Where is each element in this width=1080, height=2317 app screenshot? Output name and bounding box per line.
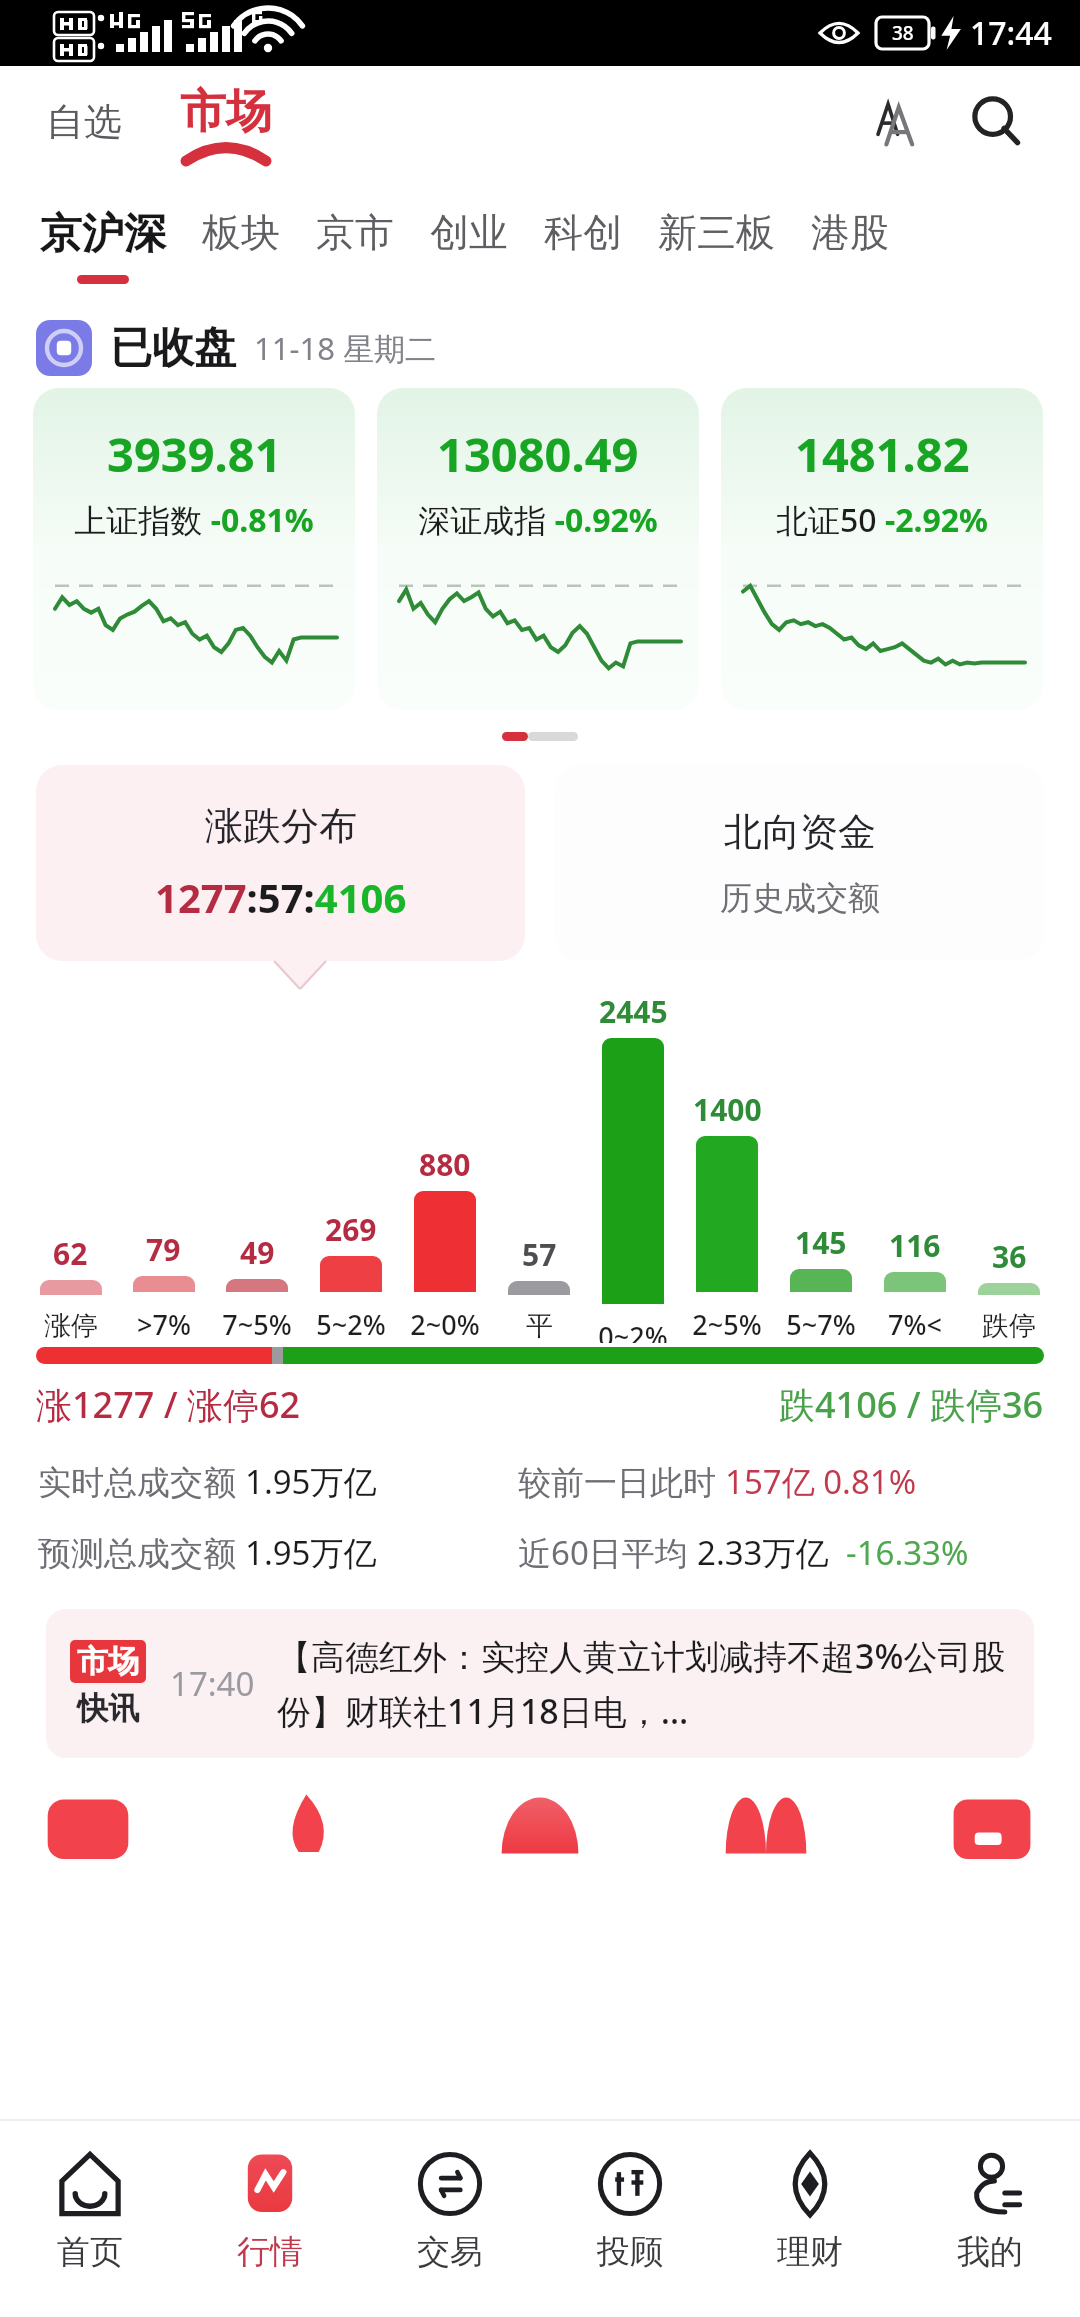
staticText: 涨跌分布 — [205, 802, 357, 850]
staticText: 近60日平均 — [518, 1530, 697, 1575]
button[interactable]: 北向资金 — [555, 765, 1044, 961]
staticText: 7%< — [888, 1306, 942, 1343]
button[interactable]: 1400 — [680, 1089, 774, 1343]
button[interactable]: 理财 — [720, 2121, 900, 2317]
staticText: 上证指数 -0.81% — [74, 498, 314, 542]
staticText: 1481.82 — [795, 422, 970, 486]
button[interactable]: 交易 — [360, 2121, 540, 2317]
button[interactable]: 科创 — [526, 178, 640, 271]
button[interactable]: 880 — [398, 1144, 492, 1343]
staticText: 5~7% — [786, 1306, 856, 1343]
staticText: 11-18 星期二 — [254, 327, 436, 369]
button[interactable]: Font size — [854, 84, 930, 160]
staticText: 【高德红外：实控人黄立计划减持不超3%公司股份】财联社11月18日电，… — [277, 1633, 1010, 1734]
button[interactable] — [492, 1782, 588, 1852]
staticText: 涨停 — [44, 1309, 98, 1343]
staticText: 49 — [240, 1232, 275, 1273]
button[interactable]: 2445 — [586, 991, 680, 1343]
staticText: 历史成交额 — [720, 878, 880, 918]
staticText: 5~2% — [316, 1306, 386, 1343]
staticText: -16.33% — [846, 1530, 969, 1575]
staticText: 北证50 -2.92% — [776, 498, 988, 542]
button[interactable]: 投顾 — [540, 2121, 720, 2317]
staticText: 涨1277 / 涨停62 — [36, 1380, 301, 1429]
staticText: 京沪深 — [40, 208, 166, 261]
button[interactable] — [944, 1782, 1040, 1852]
staticText: 2.33万亿 — [697, 1530, 846, 1575]
button[interactable]: 新三板 — [640, 178, 793, 271]
staticText: 7~5% — [222, 1306, 292, 1343]
button[interactable]: 269 — [304, 1209, 398, 1343]
staticText: 交易 — [417, 2231, 483, 2273]
staticText: 880 — [419, 1144, 471, 1185]
button[interactable] — [718, 1782, 814, 1852]
button[interactable]: 116 — [868, 1225, 962, 1343]
staticText: >7% — [137, 1306, 191, 1343]
button[interactable]: 京沪深 — [22, 178, 184, 284]
staticText: 17:44 — [970, 11, 1052, 55]
staticText: 17:40 — [170, 1661, 255, 1706]
button[interactable]: 创业 — [412, 178, 526, 271]
button[interactable]: 市场 — [180, 83, 272, 161]
button[interactable]: 62 — [24, 1233, 117, 1343]
staticText: 跌停 — [982, 1309, 1036, 1343]
staticText: 首页 — [57, 2231, 123, 2273]
button[interactable]: 1481.82 — [721, 388, 1043, 710]
staticText: 预测总成交额 — [38, 1530, 245, 1575]
staticText: 跌4106 / 跌停36 — [779, 1380, 1044, 1429]
staticText: 2~5% — [692, 1306, 762, 1343]
staticText: 0~2% — [598, 1318, 668, 1343]
button[interactable]: 行情 — [180, 2121, 360, 2317]
button[interactable]: 京市 — [298, 178, 412, 271]
staticText: 269 — [325, 1209, 377, 1250]
staticText: 36 — [992, 1236, 1027, 1277]
staticText: 1400 — [693, 1089, 762, 1130]
staticText: 2445 — [599, 991, 668, 1032]
staticText: 62 — [53, 1233, 88, 1274]
staticText: 快讯 — [77, 1689, 139, 1728]
staticText: 1277:57:4106 — [155, 870, 407, 924]
staticText: 投顾 — [597, 2231, 663, 2273]
button[interactable]: 我的 — [900, 2121, 1080, 2317]
button[interactable]: 13080.49 — [377, 388, 699, 710]
button[interactable]: 港股 — [793, 178, 907, 271]
staticText: 板块 — [202, 208, 280, 257]
staticText: 116 — [889, 1225, 941, 1266]
staticText: 平 — [526, 1309, 553, 1343]
staticText: 57 — [522, 1234, 557, 1275]
staticText: 实时总成交额 — [38, 1459, 245, 1504]
staticText: 38 — [892, 20, 914, 46]
button[interactable] — [40, 1782, 136, 1852]
staticText: 1.95万亿 — [245, 1530, 377, 1575]
staticText: 理财 — [777, 2231, 843, 2273]
staticText: 市场 — [77, 1642, 139, 1681]
staticText: 创业 — [430, 208, 508, 257]
staticText: 深证成指 -0.92% — [418, 498, 658, 542]
staticText: 2~0% — [410, 1306, 480, 1343]
staticText: 13080.49 — [437, 422, 639, 486]
button[interactable]: 3939.81 — [33, 388, 355, 710]
staticText: 北向资金 — [724, 808, 876, 856]
button[interactable]: 49 — [210, 1232, 304, 1343]
staticText: 港股 — [811, 208, 889, 257]
staticText: 行情 — [237, 2231, 303, 2273]
button[interactable]: Search — [960, 85, 1034, 159]
staticText: 已收盘 — [110, 322, 236, 375]
button[interactable]: 自选 — [40, 88, 128, 156]
button[interactable]: 57 — [492, 1234, 586, 1343]
button[interactable]: 79 — [117, 1229, 210, 1343]
button[interactable]: 145 — [774, 1222, 868, 1343]
staticText: 科创 — [544, 208, 622, 257]
staticText: 自选 — [46, 98, 122, 146]
button[interactable]: 板块 — [184, 178, 298, 271]
button[interactable]: 首页 — [0, 2121, 180, 2317]
staticText: 较前一日此时 — [518, 1459, 725, 1504]
button[interactable]: 涨跌分布 — [36, 765, 525, 961]
button[interactable]: 市场 — [46, 1609, 1034, 1758]
staticText: 145 — [795, 1222, 847, 1263]
button[interactable]: 36 — [962, 1236, 1056, 1343]
staticText: 3939.81 — [107, 422, 282, 486]
staticText: 79 — [146, 1229, 181, 1270]
staticText: 我的 — [957, 2231, 1023, 2273]
button[interactable] — [266, 1782, 362, 1852]
